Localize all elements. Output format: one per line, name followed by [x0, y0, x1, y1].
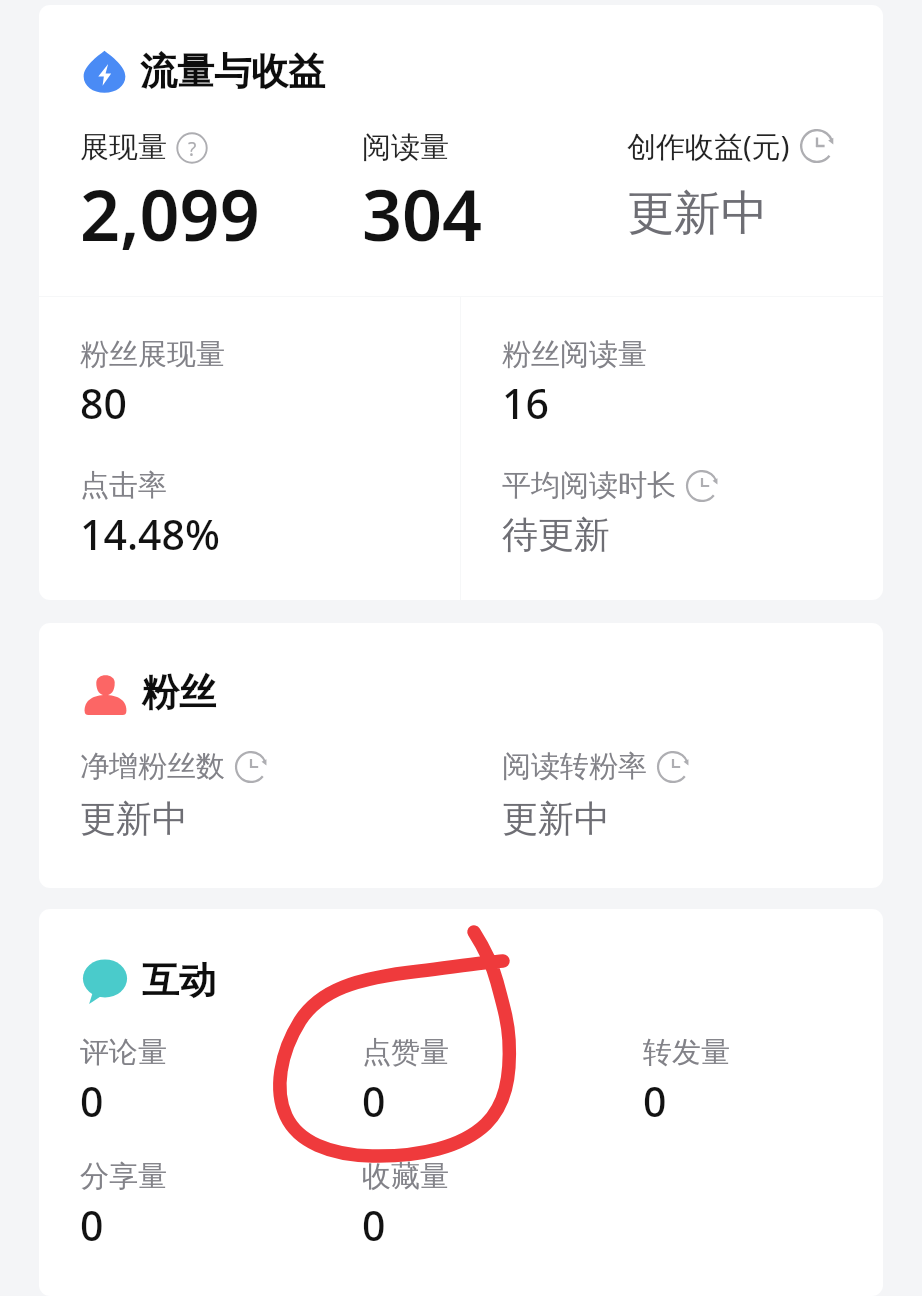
- button[interactable]: 净增粉丝数: [80, 748, 268, 841]
- staticText: 流量与收益: [140, 48, 325, 95]
- button[interactable]: Refresh pending data: [685, 469, 719, 503]
- staticText: 阅读量: [362, 129, 449, 166]
- staticText: 点击率: [80, 467, 167, 504]
- staticText: 304: [362, 166, 483, 261]
- staticText: 0: [80, 1073, 104, 1129]
- staticText: 互动: [142, 957, 216, 1004]
- staticText: 平均阅读时长: [502, 467, 676, 504]
- staticText: 分享量: [80, 1158, 167, 1195]
- staticText: 粉丝: [142, 669, 216, 716]
- staticText: 0: [80, 1197, 104, 1253]
- staticText: 更新中: [502, 796, 610, 841]
- button[interactable]: Refresh pending data: [234, 750, 268, 784]
- staticText: 收藏量: [362, 1158, 449, 1195]
- staticText: ?: [188, 135, 197, 161]
- staticText: 点赞量: [362, 1034, 449, 1071]
- staticText: 16: [502, 375, 549, 431]
- button[interactable]: 平均阅读时长: [502, 467, 719, 557]
- button[interactable]: 流量与收益: [39, 5, 883, 600]
- staticText: 更新中: [627, 184, 768, 243]
- staticText: 粉丝展现量: [80, 336, 225, 373]
- button[interactable]: 粉丝展现量: [80, 336, 225, 431]
- staticText: 14.48%: [80, 506, 220, 562]
- staticText: 粉丝阅读量: [502, 336, 647, 373]
- staticText: 待更新: [502, 512, 610, 557]
- button[interactable]: 阅读转粉率: [502, 748, 690, 841]
- staticText: 2,099: [80, 166, 260, 261]
- button[interactable]: 评论量: [80, 1034, 167, 1129]
- button[interactable]: 点击率: [80, 467, 220, 562]
- button[interactable]: Refresh pending data: [799, 128, 835, 164]
- staticText: 0: [643, 1073, 667, 1129]
- staticText: 净增粉丝数: [80, 748, 225, 785]
- staticText: 创作收益(元): [627, 126, 790, 166]
- button[interactable]: 粉丝阅读量: [502, 336, 647, 431]
- button[interactable]: Refresh pending data: [656, 750, 690, 784]
- staticText: 更新中: [80, 796, 188, 841]
- staticText: 阅读转粉率: [502, 748, 647, 785]
- button[interactable]: 粉丝: [39, 623, 883, 888]
- staticText: 80: [80, 375, 127, 431]
- button[interactable]: 转发量: [643, 1034, 730, 1129]
- staticText: 评论量: [80, 1034, 167, 1071]
- button[interactable]: 收藏量: [362, 1158, 449, 1253]
- button[interactable]: 分享量: [80, 1158, 167, 1253]
- staticText: 0: [362, 1073, 386, 1129]
- staticText: 转发量: [643, 1034, 730, 1071]
- button[interactable]: 互动: [39, 909, 883, 1296]
- staticText: 0: [362, 1197, 386, 1253]
- staticText: 展现量: [80, 129, 167, 166]
- button[interactable]: 点赞量: [362, 1034, 449, 1129]
- button[interactable]: What is impressions: [176, 132, 208, 164]
